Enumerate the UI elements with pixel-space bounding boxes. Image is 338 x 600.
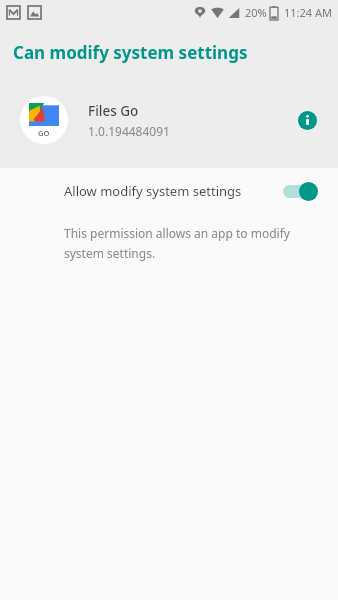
button[interactable]: GO	[0, 90, 338, 150]
staticText: Can modify system settings	[13, 41, 248, 64]
staticText: Files Go	[88, 102, 139, 120]
staticText: This permission allows an app to modify	[64, 225, 290, 241]
staticText: 20%	[245, 5, 267, 20]
button[interactable]: Allow modify system settings toggle	[280, 179, 320, 203]
staticText: system settings.	[64, 245, 156, 261]
button[interactable]: App info	[290, 103, 324, 137]
staticText: Allow modify system settings	[64, 182, 270, 200]
staticText: 11:24 AM	[284, 5, 332, 20]
button[interactable]: Allow modify system settings	[0, 168, 338, 214]
staticText: 1.0.194484091	[88, 123, 170, 139]
staticText: GO	[38, 128, 50, 138]
